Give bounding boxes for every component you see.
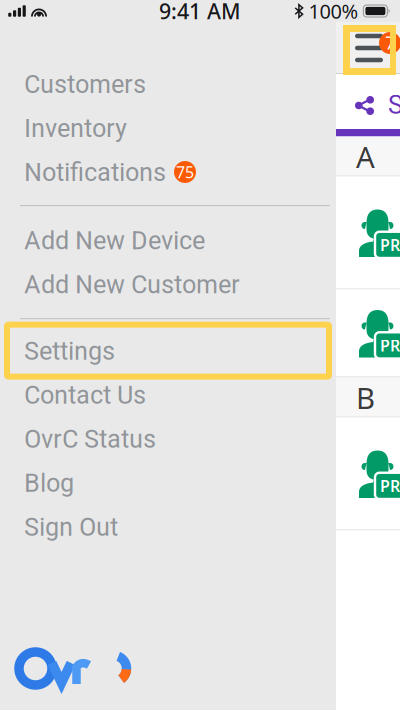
staticText: 7 xyxy=(385,32,395,54)
staticText: Contact Us xyxy=(24,379,146,410)
button[interactable]: Customers xyxy=(0,62,336,106)
button[interactable]: Settings xyxy=(0,329,336,373)
button[interactable]: Share xyxy=(336,74,400,129)
staticText: PRO xyxy=(380,234,400,255)
button[interactable]: Notifications xyxy=(0,150,336,194)
staticText: Settings xyxy=(24,335,115,366)
button[interactable]: PRO xyxy=(336,176,400,289)
staticText: Customers xyxy=(24,68,146,100)
staticText: 75 xyxy=(176,161,194,183)
staticText: PRO xyxy=(380,335,400,356)
staticText: Blog xyxy=(24,467,74,498)
staticText: Add New Customer xyxy=(24,268,240,300)
staticText: Notifications xyxy=(24,156,166,188)
button[interactable]: OvrC Status xyxy=(0,417,336,461)
staticText: 100% xyxy=(308,0,358,24)
staticText: OvrC Status xyxy=(24,423,156,454)
button[interactable]: Add New Device xyxy=(0,218,336,262)
button[interactable]: Menu xyxy=(343,25,400,75)
staticText: PRO xyxy=(380,475,400,496)
button[interactable]: Add New Customer xyxy=(0,262,336,306)
staticText: B xyxy=(356,378,375,417)
button[interactable]: Blog xyxy=(0,461,336,505)
button[interactable]: Sign Out xyxy=(0,505,336,549)
staticText: Share xyxy=(388,90,400,120)
staticText: Sign Out xyxy=(24,511,118,542)
staticText: 9:41 AM xyxy=(159,0,241,25)
staticText: A xyxy=(356,137,375,176)
button[interactable]: Contact Us xyxy=(0,373,336,417)
button[interactable]: Inventory xyxy=(0,106,336,150)
staticText: Inventory xyxy=(24,112,127,144)
button[interactable]: PRO xyxy=(336,289,400,377)
button[interactable]: PRO xyxy=(336,417,400,530)
staticText: Add New Device xyxy=(24,224,205,256)
